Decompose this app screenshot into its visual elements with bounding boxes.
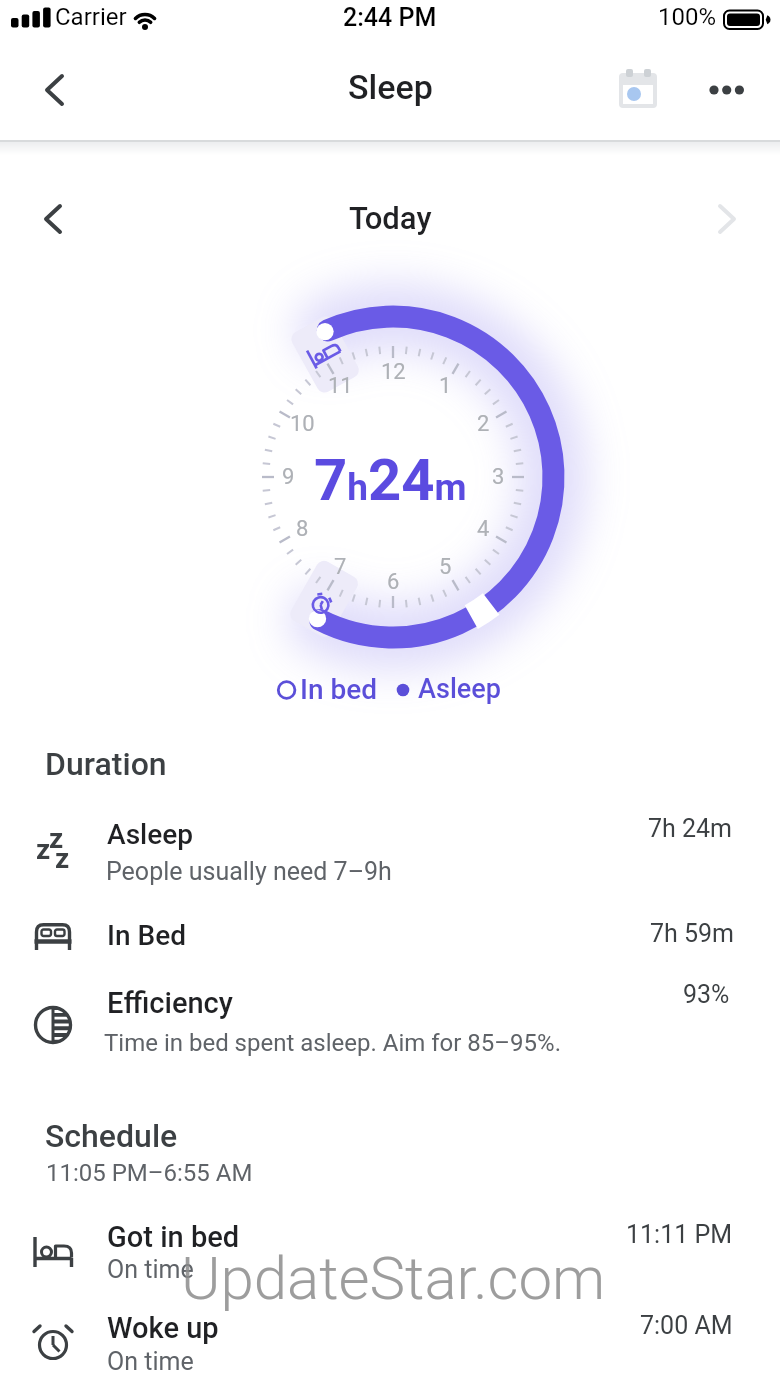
staticText: Time in bed spent asleep. Aim for 85–95%… <box>104 1029 561 1057</box>
staticText: In bed <box>300 673 378 706</box>
staticText: Efficiency <box>107 986 233 1020</box>
staticText: 7h 59m <box>650 919 735 948</box>
staticText: On time <box>107 1347 194 1376</box>
staticText: 12 <box>381 359 406 385</box>
staticText: 2:44 PM <box>343 3 437 32</box>
staticText: 7h24m <box>314 446 467 514</box>
staticText: 6 <box>387 569 400 595</box>
button[interactable]: Got in bed <box>0 1206 780 1298</box>
button[interactable]: Woke up <box>0 1297 780 1387</box>
staticText: 11 <box>328 373 353 399</box>
staticText: 7h 24m <box>648 814 733 843</box>
staticText: 100% <box>658 3 717 31</box>
staticText: 11:11 PM <box>626 1220 733 1249</box>
button[interactable] <box>612 66 664 118</box>
staticText: In Bed <box>107 919 186 952</box>
staticText: 7:00 AM <box>640 1311 733 1340</box>
staticText: Asleep <box>107 818 194 851</box>
staticText: Duration <box>45 745 167 783</box>
staticText: 3 <box>492 464 505 490</box>
staticText: 4 <box>477 516 490 542</box>
staticText: Today <box>349 200 432 236</box>
button[interactable]: Efficiency <box>0 975 780 1067</box>
staticText: z <box>55 842 70 875</box>
staticText: UpdateStar.com <box>181 1243 606 1313</box>
button[interactable]: z <box>0 806 780 898</box>
button[interactable] <box>700 66 756 122</box>
staticText: z <box>36 833 51 866</box>
button[interactable] <box>28 195 76 243</box>
button[interactable]: In Bed <box>0 905 780 967</box>
staticText: 1 <box>439 373 452 399</box>
staticText: 5 <box>439 554 452 580</box>
staticText: Sleep <box>348 67 433 107</box>
staticText: Woke up <box>107 1311 219 1345</box>
staticText: 9 <box>282 464 295 490</box>
button[interactable] <box>30 66 78 114</box>
staticText: Got in bed <box>107 1220 240 1254</box>
staticText: 8 <box>296 516 309 542</box>
staticText: 93% <box>683 980 730 1009</box>
staticText: Carrier <box>55 3 127 31</box>
staticText: 10 <box>290 411 315 437</box>
staticText: z <box>49 822 64 855</box>
staticText: Asleep <box>418 673 502 705</box>
staticText: 7 <box>334 554 347 580</box>
staticText: On time <box>107 1255 194 1284</box>
staticText: Schedule <box>45 1117 178 1155</box>
button[interactable]: Today <box>0 200 780 238</box>
button[interactable] <box>706 195 754 243</box>
staticText: 11:05 PM–6:55 AM <box>46 1159 253 1187</box>
staticText: People usually need 7–9h <box>106 857 392 886</box>
staticText: 2 <box>477 411 490 437</box>
